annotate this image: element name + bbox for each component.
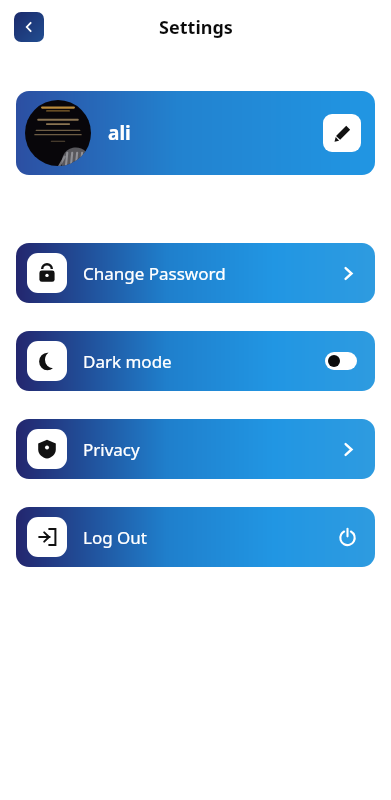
staticText: ali [108, 120, 131, 146]
button[interactable]: Log Out [16, 507, 375, 567]
button[interactable]: Back [14, 12, 44, 42]
staticText: Dark mode [83, 350, 172, 373]
staticText: Change Password [83, 262, 226, 285]
button[interactable]: ali [16, 91, 375, 175]
button[interactable]: Change Password [16, 243, 375, 303]
staticText: Settings [159, 15, 233, 40]
staticText: Log Out [83, 526, 147, 549]
staticText: Privacy [83, 438, 140, 461]
button[interactable]: Dark mode [16, 331, 375, 391]
button[interactable]: Dark mode toggle [325, 352, 357, 370]
button[interactable]: Privacy [16, 419, 375, 479]
button[interactable]: Edit profile [323, 114, 361, 152]
